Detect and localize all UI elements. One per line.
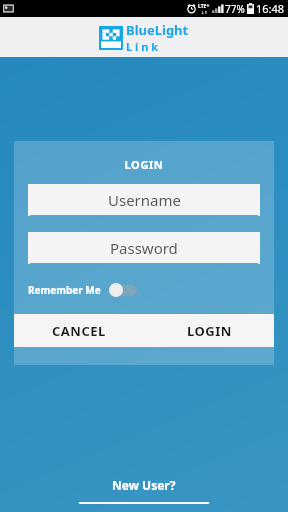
staticText: 77% xyxy=(225,2,245,16)
button[interactable]: Username xyxy=(28,184,260,216)
button[interactable]: New User? xyxy=(79,477,209,504)
staticText: 16:48 xyxy=(256,1,285,16)
button[interactable]: Password xyxy=(28,232,260,264)
staticText: LOGIN xyxy=(14,157,274,172)
staticText: CANCEL xyxy=(52,322,106,340)
staticText: Remember Me xyxy=(28,283,101,297)
button[interactable]: LOGIN xyxy=(144,314,274,347)
staticText: BlueLight xyxy=(126,21,189,39)
staticText: New User? xyxy=(112,477,176,493)
staticText: ↓↑ xyxy=(201,10,208,15)
button[interactable]: Remember Me xyxy=(28,282,139,298)
staticText: Password xyxy=(110,238,178,258)
staticText: LTE+ xyxy=(198,3,210,10)
staticText: Username xyxy=(108,190,181,210)
staticText: LOGIN xyxy=(187,322,232,340)
button[interactable]: CANCEL xyxy=(14,314,144,347)
staticText: L i n k xyxy=(126,39,158,54)
